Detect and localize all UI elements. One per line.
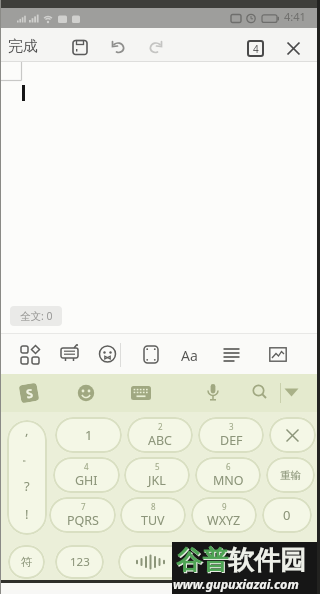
button[interactable] [0, 62, 24, 82]
button[interactable]: 9 [191, 497, 257, 533]
button[interactable]: 符 [8, 545, 45, 579]
staticText: 谷普 [176, 544, 228, 577]
button[interactable]: 2 [127, 417, 193, 453]
button[interactable]: 4 [247, 40, 264, 57]
button[interactable]: 123 [55, 545, 104, 579]
staticText: ABC [148, 432, 173, 449]
staticText: DEF [220, 432, 243, 449]
staticText: 谷普 [177, 545, 229, 578]
staticText: 0 [283, 506, 291, 524]
button[interactable] [98, 345, 117, 365]
staticText: 软件园 [228, 544, 306, 577]
button[interactable]: 1 [55, 417, 122, 453]
button[interactable] [0, 374, 320, 412]
button[interactable] [118, 545, 236, 579]
button[interactable] [7, 420, 47, 535]
button[interactable]: Aa [181, 346, 198, 365]
button[interactable] [206, 383, 220, 402]
button[interactable] [269, 417, 316, 453]
button[interactable] [143, 345, 159, 364]
button[interactable] [16, 8, 86, 28]
staticText: PQRS [67, 512, 99, 529]
staticText: 。 [22, 451, 32, 464]
button[interactable]: 重输 [266, 457, 315, 493]
staticText: 4 [84, 461, 89, 472]
staticText: GHI [75, 472, 98, 489]
button[interactable] [223, 347, 240, 363]
button[interactable] [269, 347, 287, 362]
button[interactable] [147, 39, 164, 56]
button[interactable] [286, 41, 301, 56]
staticText: JKL [148, 472, 166, 489]
staticText: S [25, 384, 34, 401]
staticText: Aa [181, 346, 198, 365]
staticText: MNO [213, 472, 244, 489]
button[interactable]: 完成 [8, 37, 38, 56]
button[interactable]: 7 [49, 497, 116, 533]
staticText: ? [24, 477, 30, 493]
staticText: 4:41 [284, 9, 306, 24]
button[interactable] [110, 39, 127, 56]
button[interactable]: 6 [195, 457, 261, 493]
button[interactable] [246, 545, 312, 579]
staticText: 2 [158, 421, 163, 432]
button[interactable]: 0 [262, 497, 312, 533]
button[interactable]: 4 [53, 457, 120, 493]
staticText: 8 [151, 501, 156, 512]
button[interactable] [59, 344, 80, 365]
staticText: 完成 [8, 37, 38, 56]
staticText: 9 [222, 501, 227, 512]
staticText: 5 [155, 461, 160, 472]
staticText: TUV [141, 512, 165, 529]
staticText: 1 [85, 426, 93, 444]
staticText: 123 [70, 554, 90, 570]
staticText: www.gupuxiazai.com [173, 576, 299, 593]
staticText: 符 [21, 555, 33, 569]
button[interactable] [131, 386, 151, 400]
staticText: 全文: 0 [20, 309, 53, 323]
button[interactable] [284, 388, 299, 397]
button[interactable] [134, 554, 168, 570]
staticText: 重输 [280, 469, 301, 482]
staticText: WXYZ [207, 512, 241, 529]
staticText: 6 [226, 461, 231, 472]
staticText: 4 [253, 42, 259, 56]
staticText: 3 [229, 421, 234, 432]
button[interactable] [252, 384, 268, 401]
staticText: , [25, 421, 29, 437]
button[interactable] [20, 345, 40, 365]
button[interactable] [72, 39, 88, 56]
button[interactable]: S [19, 383, 39, 403]
button[interactable]: 8 [120, 497, 186, 533]
staticText: 7 [81, 501, 86, 512]
button[interactable]: 5 [124, 457, 190, 493]
button[interactable]: 3 [198, 417, 264, 453]
button[interactable] [77, 384, 95, 402]
staticText: ! [25, 505, 29, 521]
button[interactable] [229, 8, 289, 28]
